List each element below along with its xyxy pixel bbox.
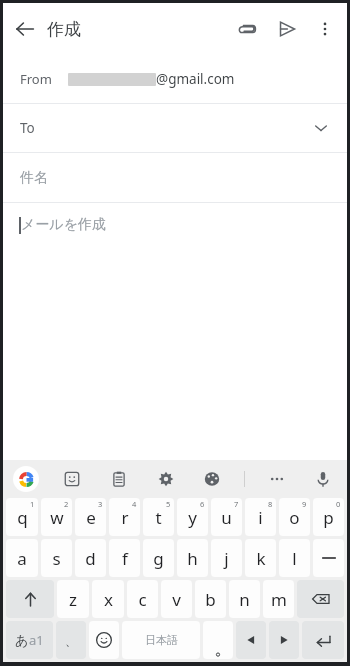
button[interactable]: Minus [313,539,344,577]
staticText: 1 [30,499,35,509]
staticText: あ [15,632,29,648]
button[interactable]: c [127,580,158,618]
button[interactable]: Enter [302,621,344,659]
button[interactable]: From [3,55,347,103]
button[interactable]: More [263,465,291,493]
staticText: p [323,506,334,529]
staticText: 作成 [47,19,81,40]
button[interactable]: Period [203,621,233,659]
staticText: 0 [336,499,341,509]
staticText: l [292,547,297,570]
staticText: 8 [268,499,273,509]
staticText: q [17,506,28,529]
staticText: 件名 [20,169,48,187]
button[interactable]: z [57,580,89,618]
staticText: t [155,506,162,529]
staticText: d [85,547,96,570]
button[interactable]: Comma [56,621,86,659]
button[interactable]: u [211,498,242,536]
button[interactable]: Shift [6,580,54,618]
button[interactable]: Space [122,621,200,659]
button[interactable]: p [313,498,344,536]
button[interactable]: o [279,498,310,536]
button[interactable]: 件名 [3,153,347,202]
staticText: x [104,588,113,611]
button[interactable]: To [3,104,347,152]
staticText: v [172,588,181,611]
button[interactable]: b [195,580,226,618]
staticText: j [224,547,229,570]
button[interactable]: Send [267,9,307,49]
button[interactable]: Stickers [58,465,86,493]
staticText: z [69,588,77,611]
staticText: i [258,506,263,529]
button[interactable]: Attach file [227,9,267,49]
button[interactable]: メールを作成 [3,203,347,247]
staticText: 4 [132,499,137,509]
staticText: m [271,588,287,611]
other: Expand recipients [307,114,335,142]
staticText: s [52,547,61,570]
button[interactable]: Google [13,466,39,492]
staticText: 9 [302,499,307,509]
staticText: 、 [65,633,77,648]
button[interactable]: Themes [198,465,226,493]
button[interactable]: h [177,539,208,577]
button[interactable]: Delete [297,580,344,618]
staticText: a1 [29,631,44,649]
staticText: u [221,506,232,529]
button[interactable]: x [92,580,124,618]
staticText: n [239,588,250,611]
button[interactable]: Move cursor left [236,621,266,659]
button[interactable]: y [177,498,208,536]
button[interactable]: l [279,539,310,577]
button[interactable]: r [109,498,140,536]
button[interactable]: g [143,539,174,577]
button[interactable]: Emoji [89,621,119,659]
button[interactable]: Back [3,7,47,51]
staticText: k [256,547,266,570]
staticText: y [188,506,197,529]
staticText: g [153,547,164,570]
staticText: 5 [166,499,171,509]
button[interactable]: Settings [152,465,180,493]
staticText: 2 [64,499,69,509]
button[interactable]: More options [307,11,343,47]
staticText: @gmail.com [156,70,235,88]
button[interactable]: Clipboard [105,465,133,493]
button[interactable]: m [263,580,294,618]
staticText: b [205,588,216,611]
button[interactable]: n [229,580,260,618]
staticText: r [121,506,129,529]
staticText: e [86,506,96,529]
staticText: メールを作成 [21,216,106,234]
button[interactable]: q [6,498,38,536]
staticText: To [20,119,35,137]
button[interactable]: a [6,539,38,577]
staticText: a [17,547,27,570]
staticText: c [138,588,147,611]
button[interactable]: k [245,539,276,577]
button[interactable]: Move cursor right [269,621,299,659]
button[interactable]: i [245,498,276,536]
staticText: From [20,70,52,88]
staticText: o [289,506,300,529]
staticText: f [122,547,128,570]
staticText: h [187,547,198,570]
staticText: 日本語 [145,633,178,647]
staticText: 3 [98,499,103,509]
button[interactable]: Switch input mode [6,621,53,659]
button[interactable]: t [143,498,174,536]
button[interactable]: f [109,539,140,577]
staticText: 6 [200,499,205,509]
button[interactable]: j [211,539,242,577]
button[interactable]: v [161,580,192,618]
button[interactable]: s [41,539,72,577]
button[interactable]: Voice input [309,465,337,493]
button[interactable]: d [75,539,106,577]
staticText: w [50,506,64,529]
staticText: 7 [234,499,239,509]
button[interactable]: w [41,498,72,536]
button[interactable]: e [75,498,106,536]
